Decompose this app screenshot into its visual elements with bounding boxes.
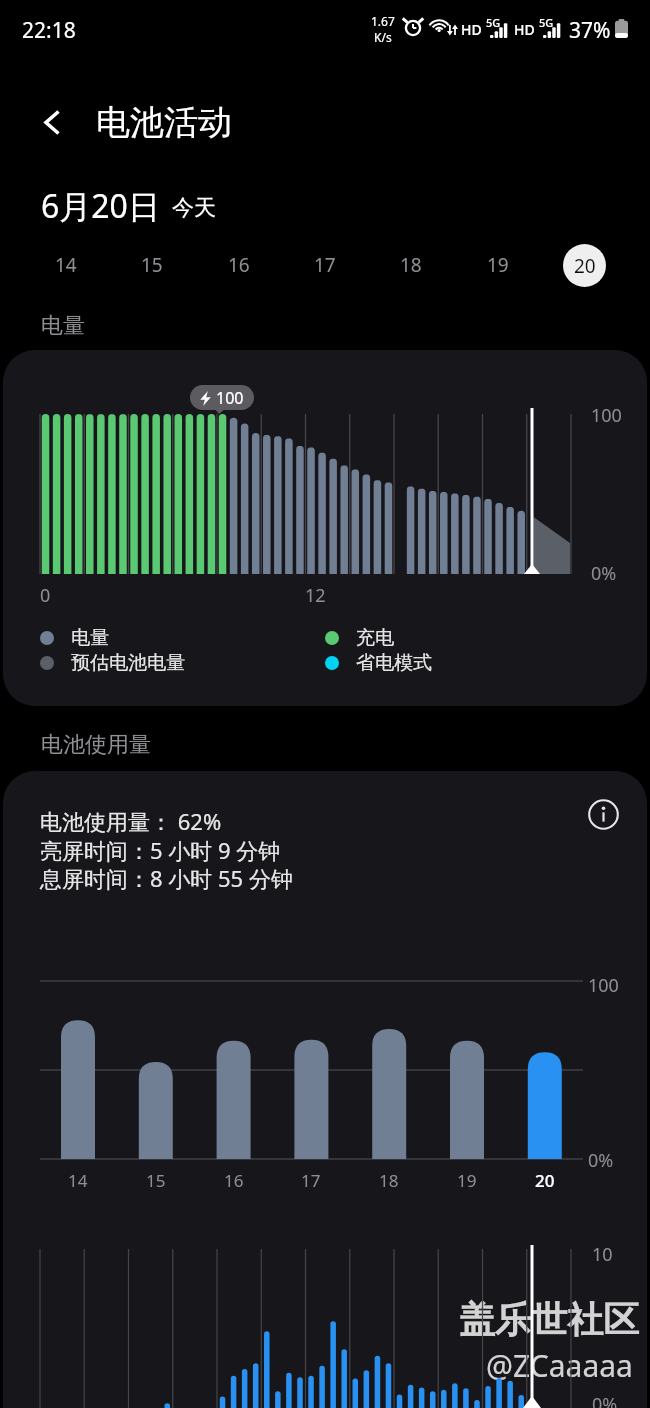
button[interactable]: 19 xyxy=(467,242,529,288)
button[interactable]: 18 xyxy=(367,1166,411,1194)
staticText: 16 xyxy=(228,252,250,278)
staticText: 5G xyxy=(486,15,501,30)
button[interactable]: 省电模式 xyxy=(325,651,432,675)
staticText: HD xyxy=(461,20,482,39)
staticText: 17 xyxy=(314,252,336,278)
button[interactable] xyxy=(3,350,647,706)
staticText: 12 xyxy=(305,583,326,608)
button[interactable]: 预估电池电量 xyxy=(40,651,185,675)
staticText: 18 xyxy=(379,1169,399,1192)
staticText: HD xyxy=(514,20,535,39)
staticText: 19 xyxy=(457,1169,477,1192)
staticText: 电池活动 xyxy=(96,101,232,144)
button[interactable]: 20 xyxy=(553,242,615,288)
button[interactable]: 20 xyxy=(523,1166,567,1194)
staticText: @ZCaaaaa xyxy=(486,1345,633,1386)
staticText: 充电 xyxy=(356,626,394,650)
button[interactable]: 18 xyxy=(380,242,442,288)
staticText: 6月20日 xyxy=(41,184,160,228)
staticText: K/s xyxy=(374,29,392,45)
button[interactable]: Info xyxy=(586,797,620,831)
staticText: 0 xyxy=(40,583,51,608)
staticText: 电量 xyxy=(71,626,109,650)
staticText: 15 xyxy=(141,252,163,278)
button[interactable]: 16 xyxy=(212,1166,256,1194)
button[interactable] xyxy=(3,771,647,1408)
staticText: 100 xyxy=(588,973,619,998)
staticText: 17 xyxy=(301,1169,321,1192)
button[interactable]: Back xyxy=(34,104,70,140)
staticText: 100 xyxy=(216,387,244,409)
staticText: 10 xyxy=(592,1242,613,1267)
staticText: 息屏时间：8 小时 55 分钟 xyxy=(40,863,293,893)
staticText: 省电模式 xyxy=(356,651,432,675)
staticText: 0% xyxy=(591,561,617,586)
staticText: 电池使用量 xyxy=(41,731,151,759)
button[interactable]: 充电 xyxy=(325,626,394,650)
staticText: 16 xyxy=(224,1169,244,1192)
staticText: 20 xyxy=(574,253,596,279)
staticText: 14 xyxy=(55,252,77,278)
staticText: 18 xyxy=(400,252,422,278)
button[interactable]: 14 xyxy=(35,242,97,288)
button[interactable]: 19 xyxy=(445,1166,489,1194)
staticText: 1.67 xyxy=(371,13,395,29)
button[interactable]: 16 xyxy=(208,242,270,288)
staticText: 37% xyxy=(569,16,611,45)
staticText: 0% xyxy=(592,1392,618,1408)
staticText: 19 xyxy=(487,252,509,278)
staticText: 15 xyxy=(146,1169,166,1192)
staticText: 电池使用量： 62% xyxy=(40,806,222,836)
staticText: 100 xyxy=(591,403,622,428)
button[interactable]: 电量 xyxy=(40,626,109,650)
button[interactable]: 15 xyxy=(121,242,183,288)
staticText: 20 xyxy=(535,1169,555,1192)
staticText: 22:18 xyxy=(22,16,76,45)
staticText: 5G xyxy=(539,15,554,30)
staticText: 预估电池电量 xyxy=(71,651,185,675)
button[interactable]: 17 xyxy=(289,1166,333,1194)
staticText: 亮屏时间：5 小时 9 分钟 xyxy=(40,835,281,865)
button[interactable]: 17 xyxy=(294,242,356,288)
button[interactable]: 14 xyxy=(56,1166,100,1194)
staticText: 盖乐世社区 xyxy=(459,1297,639,1342)
staticText: 0% xyxy=(588,1148,614,1173)
button[interactable]: 15 xyxy=(134,1166,178,1194)
staticText: 14 xyxy=(68,1169,88,1192)
staticText: 电量 xyxy=(41,312,85,340)
staticText: 今天 xyxy=(172,194,216,222)
